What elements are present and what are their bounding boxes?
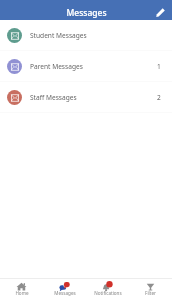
button[interactable]: Parent Messages [0,51,172,81]
staticText: Notifications [94,290,122,296]
staticText: 2 [157,93,161,102]
button[interactable]: Student Messages [0,20,172,50]
button[interactable]: Messages [43,279,86,300]
staticText: Parent Messages [30,62,83,71]
staticText: Student Messages [30,31,87,40]
button[interactable]: Filter [129,279,172,300]
staticText: 1 [157,62,161,71]
staticText: Home [15,290,29,296]
button[interactable]: Home [0,279,43,300]
staticText: Filter [145,290,156,296]
button[interactable]: Staff Messages [0,82,172,112]
staticText: Messages [66,7,107,19]
staticText: Staff Messages [30,93,77,102]
button[interactable]: Compose message [151,1,169,19]
staticText: Messages [54,290,76,296]
button[interactable]: Notifications [86,279,129,300]
